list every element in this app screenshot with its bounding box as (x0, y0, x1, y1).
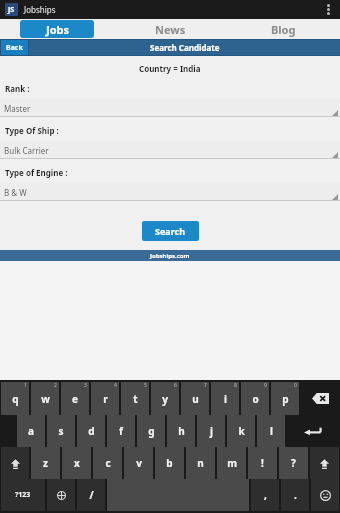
staticText: Jobs (46, 22, 69, 37)
button[interactable]: Search (155, 225, 186, 237)
button[interactable]: p (271, 382, 299, 415)
staticText: c (105, 456, 111, 470)
staticText: 3 (84, 382, 87, 389)
staticText: i (224, 392, 227, 406)
staticText: B & W (4, 187, 27, 198)
staticText: h (178, 424, 185, 438)
button[interactable]: s (47, 415, 75, 447)
button[interactable]: e (61, 382, 89, 415)
staticText: q (12, 392, 19, 406)
staticText: Jobships (24, 4, 56, 15)
staticText: d (88, 424, 95, 438)
staticText: g (148, 424, 155, 438)
button[interactable]: t (121, 382, 149, 415)
staticText: p (282, 392, 289, 406)
button[interactable]: . (281, 479, 309, 511)
staticText: Jobships.com (150, 252, 190, 260)
staticText: 7 (204, 382, 207, 389)
staticText: e (72, 392, 78, 406)
button[interactable]: ? (279, 447, 308, 479)
staticText: Back (6, 43, 23, 53)
staticText: 4 (114, 382, 117, 389)
button[interactable]: z (31, 447, 60, 479)
button[interactable]: b (155, 447, 184, 479)
button[interactable]: More options (321, 0, 335, 19)
button[interactable]: w (31, 382, 59, 415)
staticText: w (41, 392, 50, 406)
staticText: / (89, 488, 94, 502)
staticText: Search (155, 225, 186, 237)
button[interactable]: d (77, 415, 105, 447)
staticText: b (166, 456, 173, 470)
staticText: r (103, 392, 108, 406)
staticText: s (58, 424, 64, 438)
button[interactable]: n (186, 447, 215, 479)
staticText: z (43, 456, 48, 470)
button[interactable]: Emoji (311, 479, 339, 511)
button[interactable]: u (181, 382, 209, 415)
staticText: Rank : (5, 83, 30, 94)
button[interactable]: ! (248, 447, 277, 479)
button[interactable]: f (107, 415, 135, 447)
staticText: u (192, 392, 199, 406)
button[interactable]: Back (1, 40, 28, 55)
staticText: x (74, 456, 80, 470)
staticText: 5 (144, 382, 147, 389)
staticText: t (133, 392, 138, 406)
button[interactable]: / (77, 479, 105, 511)
staticText: , (264, 488, 267, 502)
button[interactable]: o (241, 382, 269, 415)
staticText: 1 (24, 382, 27, 389)
button[interactable]: x (62, 447, 91, 479)
button[interactable]: c (93, 447, 122, 479)
button[interactable]: k (227, 415, 255, 447)
button[interactable]: g (137, 415, 165, 447)
button[interactable]: Enter (287, 415, 339, 447)
button[interactable]: q (1, 382, 29, 415)
staticText: l (270, 424, 273, 438)
button[interactable]: Shift (310, 447, 339, 479)
button[interactable]: r (91, 382, 119, 415)
button[interactable]: Jobs (20, 20, 94, 38)
staticText: News (155, 22, 186, 37)
staticText: j (210, 424, 213, 438)
button[interactable]: Bulk Carrier (0, 141, 340, 159)
button[interactable]: m (217, 447, 246, 479)
staticText: Type Of Ship : (5, 125, 59, 136)
button[interactable]: h (167, 415, 195, 447)
staticText: Master (4, 103, 31, 114)
button[interactable]: Backspace (301, 382, 339, 415)
button[interactable]: , (251, 479, 279, 511)
staticText: y (162, 392, 168, 406)
staticText: m (227, 456, 237, 470)
button[interactable]: l (257, 415, 285, 447)
button[interactable]: News (114, 19, 227, 39)
staticText: k (238, 424, 245, 438)
button[interactable]: Master (0, 99, 340, 117)
staticText: n (197, 456, 204, 470)
staticText: ?123 (15, 490, 31, 500)
button[interactable]: y (151, 382, 179, 415)
staticText: v (136, 456, 142, 470)
button[interactable]: i (211, 382, 239, 415)
staticText: . (294, 488, 297, 502)
button[interactable]: Blog (227, 19, 340, 39)
staticText: ? (291, 456, 296, 470)
button[interactable]: Shift (1, 447, 29, 479)
button[interactable]: Change keyboard (47, 479, 75, 511)
staticText: 6 (174, 382, 177, 389)
button[interactable]: ?123 (1, 479, 45, 511)
staticText: 9 (264, 382, 267, 389)
button[interactable]: B & W (0, 183, 340, 201)
staticText: Bulk Carrier (4, 145, 49, 156)
staticText: o (252, 392, 259, 406)
button[interactable]: j (197, 415, 225, 447)
staticText: Country = India (139, 63, 201, 74)
button[interactable]: a (17, 415, 45, 447)
button[interactable]: v (124, 447, 153, 479)
staticText: JS (8, 5, 15, 15)
staticText: 0 (294, 382, 297, 389)
staticText: a (28, 424, 34, 438)
staticText: 2 (54, 382, 57, 389)
